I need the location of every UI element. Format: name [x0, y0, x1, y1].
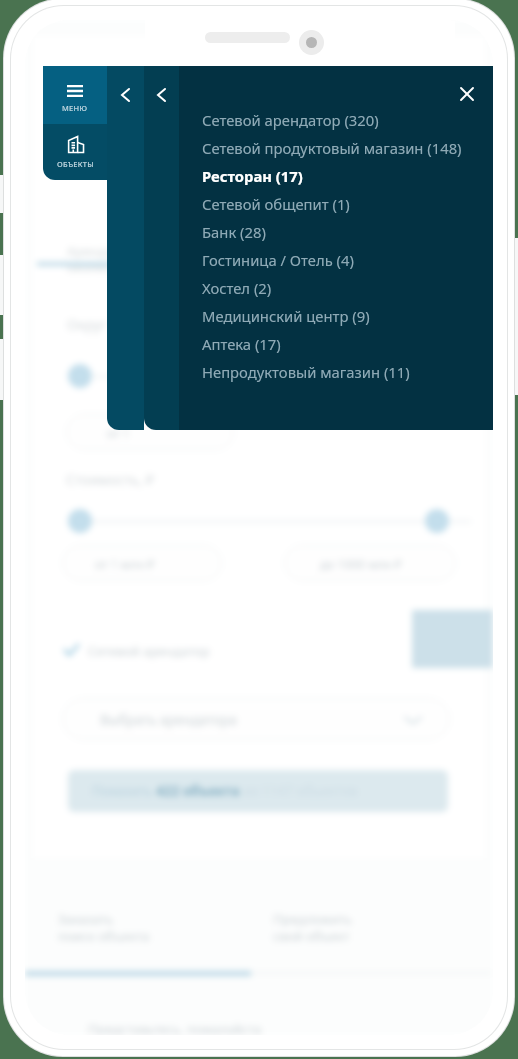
button[interactable]: МЕНЮ: [43, 66, 107, 124]
staticText: 422 объекта: [156, 782, 240, 800]
button[interactable]: Сетевой арендатор (320): [202, 106, 487, 134]
staticText: МЕНЮ: [62, 103, 88, 113]
button[interactable]: ОБЪЕКТЫ: [43, 124, 107, 180]
button[interactable]: Банк (28): [202, 218, 487, 246]
staticText: Сетевой арендатор (320): [202, 110, 379, 130]
button[interactable]: Ресторан (17): [202, 162, 487, 190]
staticText: поиск объекта: [58, 927, 150, 945]
staticText: Предложить: [273, 910, 352, 928]
button[interactable]: Закрыть: [445, 72, 489, 116]
staticText: ОБЪЕКТЫ: [57, 159, 94, 169]
staticText: Аренда /: [67, 242, 122, 260]
staticText: Сетевой продуктовый магазин (148): [202, 138, 462, 158]
staticText: бизнеса: [67, 258, 118, 276]
staticText: Представьтесь, пожалуйста: [88, 1020, 262, 1035]
staticText: Непродуктовый магазин (11): [202, 362, 410, 382]
button[interactable]: Медицинский центр (9): [202, 302, 487, 330]
staticText: Заказать: [58, 910, 114, 928]
staticText: до 1000 млн ₽: [320, 556, 402, 572]
staticText: Показать: [92, 782, 156, 800]
staticText: свой объект: [273, 927, 350, 945]
button[interactable]: Сетевой общепит (1): [202, 190, 487, 218]
staticText: от 1: [107, 425, 130, 441]
staticText: Хостел (2): [202, 278, 272, 298]
staticText: Аптека (17): [202, 334, 281, 354]
button[interactable]: Гостиница / Отель (4): [202, 246, 487, 274]
staticText: Ресторан (17): [202, 166, 303, 186]
staticText: Округ: [67, 315, 107, 334]
staticText: Сетевой общепит (1): [202, 194, 350, 214]
staticText: Сетевой арендатор: [88, 642, 210, 660]
staticText: Гостиница / Отель (4): [202, 250, 354, 270]
button[interactable]: Сетевой продуктовый магазин (148): [202, 134, 487, 162]
staticText: Выбрать арендатора: [100, 711, 237, 729]
staticText: Стоимость, ₽: [66, 470, 154, 489]
staticText: Медицинский центр (9): [202, 306, 370, 326]
button[interactable]: Аптека (17): [202, 330, 487, 358]
staticText: Банк (28): [202, 222, 266, 242]
button[interactable]: Назад: [144, 66, 179, 124]
staticText: от 1 млн ₽: [95, 556, 155, 572]
button[interactable]: Назад: [107, 66, 144, 124]
button[interactable]: Хостел (2): [202, 274, 487, 302]
button[interactable]: Непродуктовый магазин (11): [202, 358, 487, 386]
